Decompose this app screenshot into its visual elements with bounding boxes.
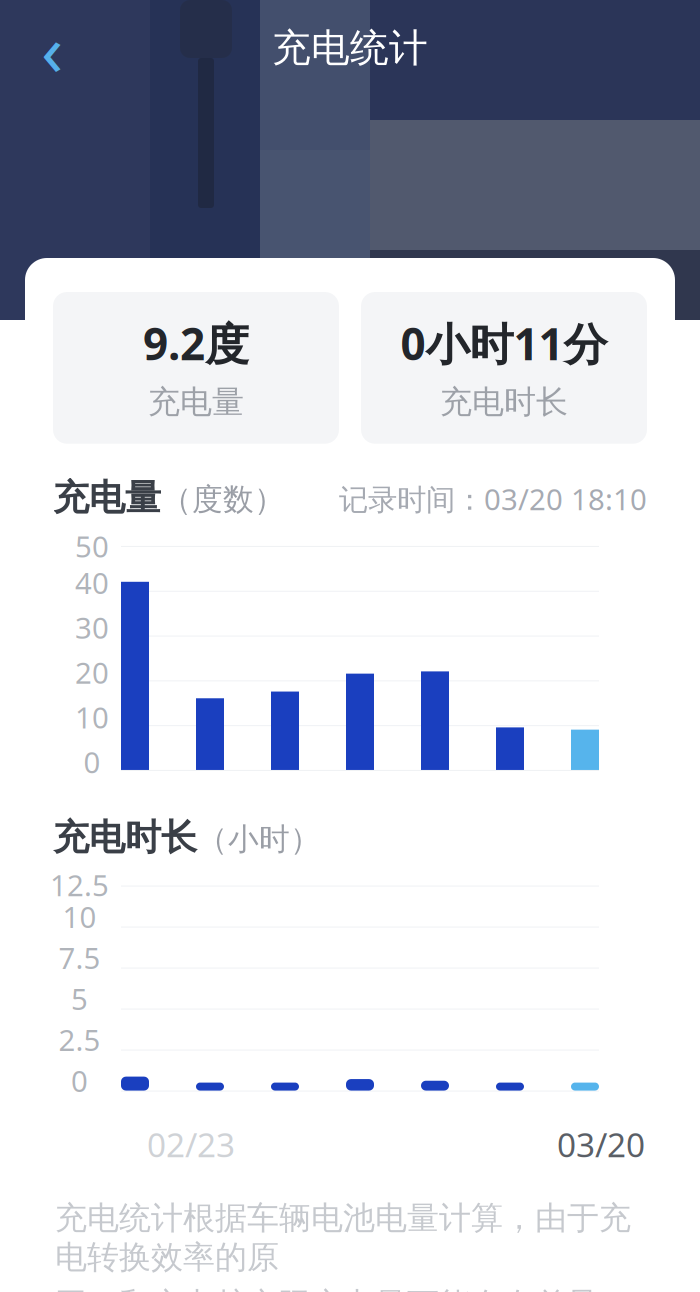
staticText: 充电量 bbox=[53, 476, 161, 520]
staticText: 12.5 bbox=[50, 865, 109, 904]
staticText: 充电时长 bbox=[440, 382, 568, 422]
staticText: 10 bbox=[62, 897, 96, 936]
staticText: 0小时11分 bbox=[400, 314, 607, 372]
staticText: （度数） bbox=[161, 481, 285, 518]
staticText: ‹ bbox=[41, 0, 63, 96]
staticText: 充电时长 bbox=[53, 815, 197, 860]
staticText: 0 bbox=[83, 742, 100, 781]
button[interactable]: Back bbox=[22, 18, 82, 78]
staticText: 7.5 bbox=[58, 938, 100, 977]
staticText: 10 bbox=[75, 698, 109, 737]
staticText: 50 bbox=[75, 527, 109, 566]
staticText: 记录时间：03/20 18:10 bbox=[339, 479, 647, 518]
staticText: 充电量 bbox=[148, 382, 244, 422]
staticText: 02/23 bbox=[147, 1122, 235, 1166]
staticText: 5 bbox=[71, 979, 88, 1018]
staticText: 0 bbox=[71, 1061, 88, 1100]
staticText: （小时） bbox=[197, 820, 321, 858]
staticText: 2.5 bbox=[58, 1020, 100, 1059]
staticText: 9.2度 bbox=[143, 314, 249, 372]
staticText: 40 bbox=[75, 563, 109, 602]
staticText: 充电统计根据车辆电池电量计算，由于充电转换效率的原 bbox=[55, 1198, 631, 1277]
staticText: 充电统计 bbox=[272, 24, 428, 72]
staticText: 20 bbox=[75, 653, 109, 692]
staticText: 30 bbox=[75, 608, 109, 647]
staticText: 03/20 bbox=[557, 1122, 645, 1166]
staticText: 因，和充电桩实际充电量可能存在差异。 bbox=[55, 1285, 631, 1292]
